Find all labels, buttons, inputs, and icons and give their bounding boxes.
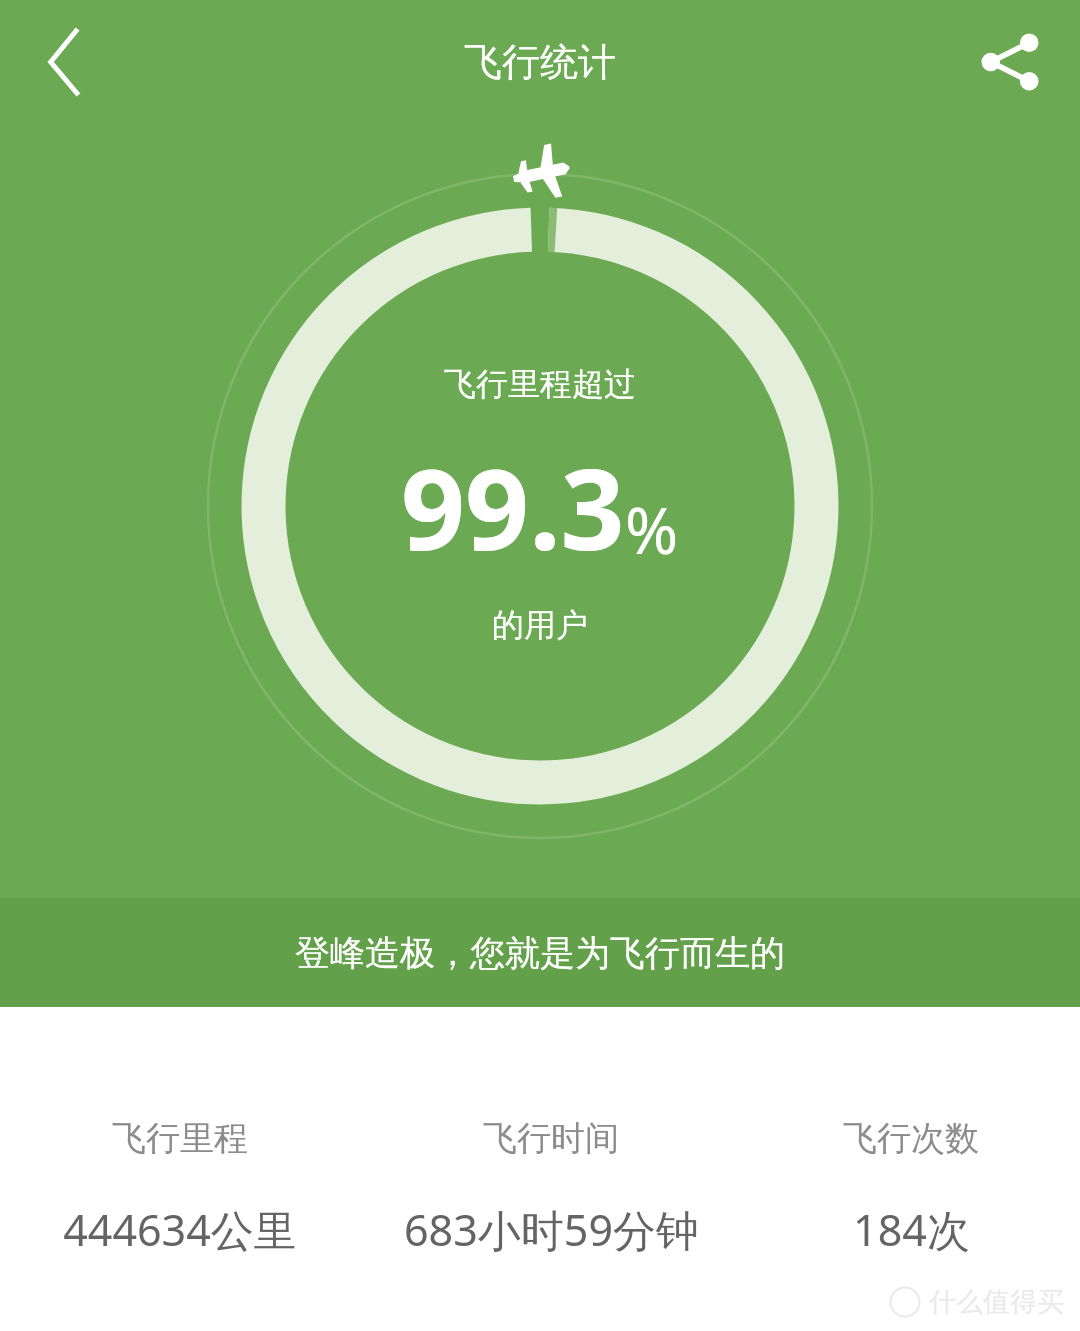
staticText: 飞行时间	[483, 1117, 619, 1160]
staticText: 什么值得买	[929, 1285, 1064, 1319]
staticText: 184次	[853, 1200, 970, 1259]
staticText: 飞行里程	[112, 1117, 248, 1160]
staticText: 99.3	[401, 430, 625, 583]
button[interactable]: 飞行次数	[742, 1117, 1080, 1259]
button[interactable]: 飞行里程	[0, 1117, 360, 1259]
button[interactable]: 飞行时间	[360, 1117, 742, 1259]
staticText: 飞行里程超过	[444, 364, 636, 404]
staticText: 飞行统计	[464, 38, 616, 86]
staticText: 683小时59分钟	[404, 1200, 699, 1259]
staticText: 登峰造极，您就是为飞行而生的	[295, 931, 785, 975]
button[interactable]: Back	[0, 0, 130, 124]
staticText: %	[625, 486, 679, 573]
staticText: 的用户	[492, 605, 588, 645]
staticText: 444634公里	[63, 1200, 297, 1259]
staticText: 飞行次数	[843, 1117, 979, 1160]
button[interactable]: Share	[940, 0, 1080, 124]
